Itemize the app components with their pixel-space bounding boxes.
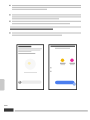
button[interactable]	[0, 0, 90, 120]
